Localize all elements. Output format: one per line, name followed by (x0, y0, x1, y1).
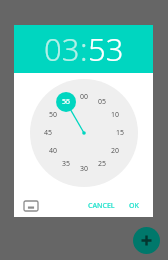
staticText: 03 (44, 28, 80, 70)
staticText: 25 (98, 159, 107, 169)
staticText: 53 (88, 28, 124, 70)
staticText: CANCEL (88, 201, 115, 211)
staticText: 20 (111, 146, 120, 156)
staticText: 05 (98, 97, 107, 107)
staticText: 55 (62, 97, 71, 107)
staticText: 10 (111, 110, 120, 120)
staticText: OK (129, 201, 139, 211)
staticText: 00 (80, 92, 89, 102)
staticText: 50 (49, 110, 58, 120)
button[interactable]: 00 (30, 79, 138, 187)
staticText: : (80, 28, 88, 70)
staticText: 40 (49, 146, 58, 156)
staticText: 45 (44, 128, 53, 138)
button[interactable]: Add (133, 227, 160, 254)
staticText: 35 (62, 159, 71, 169)
staticText: 30 (80, 164, 89, 174)
button[interactable]: CANCEL (84, 197, 119, 215)
button[interactable]: Switch to keyboard input (22, 197, 40, 215)
staticText: 15 (116, 128, 125, 138)
button[interactable]: OK (125, 197, 143, 215)
button[interactable]: 03 (14, 25, 153, 73)
